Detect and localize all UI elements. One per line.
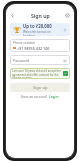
button[interactable]: Password	[10, 55, 70, 65]
staticText: Up to ₹20,000	[23, 23, 52, 29]
button[interactable]: Accept agreement	[63, 71, 68, 76]
button[interactable]: Have an account?	[10, 95, 70, 99]
button[interactable]: Phone number	[10, 39, 70, 52]
staticText: Sign up	[31, 12, 50, 19]
staticText: I am over 18 years old and I accept the …	[12, 69, 61, 79]
button[interactable]: Back	[8, 11, 17, 20]
staticText: Log in	[49, 95, 59, 99]
staticText: Sign up	[33, 85, 48, 90]
button[interactable]: I am over 18 years old and I accept the …	[10, 68, 70, 79]
button[interactable]: Sign up	[10, 83, 70, 92]
staticText: Welcome bonus on booking	[23, 30, 63, 36]
staticText: Phone number	[13, 41, 36, 45]
button[interactable]: Help	[63, 11, 72, 20]
button[interactable]: Show password	[62, 58, 67, 63]
button[interactable]: Up to ₹20,000	[10, 23, 70, 36]
staticText: +91 98765 432 100	[17, 46, 50, 50]
staticText: Have an account?	[21, 95, 49, 99]
staticText: Password	[13, 58, 62, 63]
